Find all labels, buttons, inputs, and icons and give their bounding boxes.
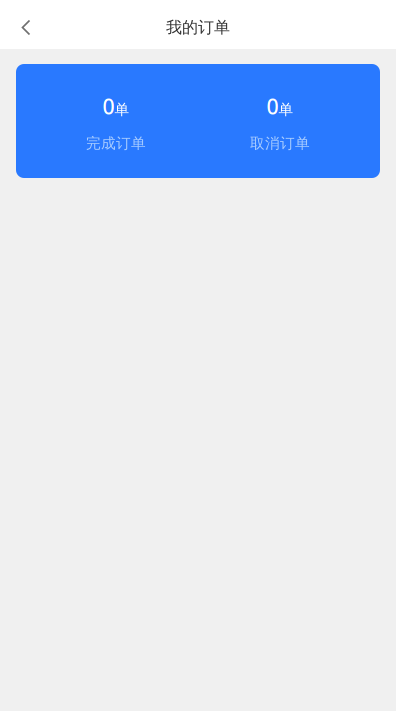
button[interactable]: 0 [198, 64, 380, 178]
staticText: 单 [278, 100, 293, 118]
staticText: 0 [266, 92, 278, 120]
button[interactable]: 0 [16, 64, 198, 178]
staticText: 完成订单 [86, 134, 146, 152]
staticText: 我的订单 [166, 18, 230, 37]
staticText: 0 [102, 92, 114, 120]
button[interactable]: Back [4, 6, 48, 49]
staticText: 取消订单 [250, 134, 310, 152]
staticText: 单 [114, 100, 129, 118]
